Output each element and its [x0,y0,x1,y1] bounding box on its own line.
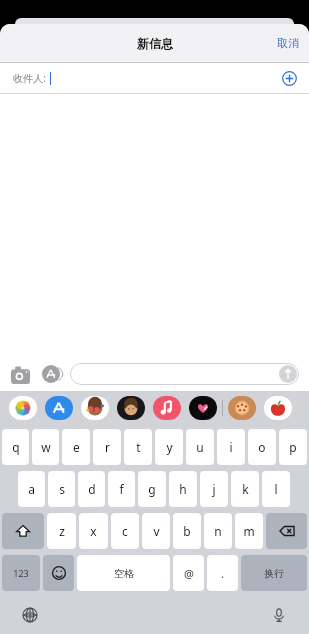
button[interactable]: m [235,513,263,549]
button[interactable]: 换行 [241,555,307,591]
staticText: 收件人: [13,71,46,85]
button[interactable]: Stickers [81,395,109,421]
button[interactable]: Photos [9,395,37,421]
button[interactable]: x [79,513,108,549]
button[interactable]: o [248,429,276,465]
button[interactable]: Dictation [267,603,291,627]
button[interactable]: 123 [2,555,40,591]
button[interactable]: f [108,471,135,507]
staticText: i [229,439,233,455]
button[interactable]: i [217,429,245,465]
staticText: n [214,523,222,539]
button[interactable]: d [78,471,105,507]
other: Send [279,365,297,383]
staticText: b [183,523,191,539]
staticText: p [289,439,297,455]
button[interactable]: q [2,429,29,465]
button[interactable]: l [262,471,290,507]
button[interactable]: More [264,395,292,421]
staticText: f [119,481,124,497]
button[interactable]: r [93,429,121,465]
staticText: j [212,481,216,497]
button[interactable]: 空格 [77,555,170,591]
button[interactable]: 取消 [267,30,309,56]
button[interactable]: 收件人: [0,63,309,93]
button[interactable]: n [204,513,232,549]
button[interactable]: Emoji [43,555,74,591]
staticText: 取消 [277,36,299,50]
button[interactable]: Memoji [117,395,145,421]
button[interactable]: h [169,471,197,507]
staticText: c [122,523,128,539]
button[interactable]: c [111,513,139,549]
staticText: v [153,523,160,539]
staticText: d [88,481,96,497]
button[interactable]: @ [173,555,204,591]
button[interactable]: w [32,429,59,465]
button[interactable]: s [48,471,75,507]
button[interactable]: App Store [45,395,73,421]
staticText: h [179,481,187,497]
button[interactable]: . [207,555,238,591]
button[interactable]: y [155,429,183,465]
button[interactable]: v [142,513,170,549]
button[interactable]: e [62,429,90,465]
staticText: t [136,439,141,455]
staticText: w [41,439,51,455]
button[interactable]: Add contact [278,67,300,89]
staticText: r [105,439,110,455]
staticText: 新信息 [137,36,173,51]
button[interactable]: z [47,513,76,549]
staticText: 123 [13,567,29,579]
staticText: y [166,439,173,455]
staticText: 换行 [264,567,284,580]
staticText: . [221,566,224,581]
button[interactable]: k [231,471,259,507]
button[interactable]: b [173,513,201,549]
button[interactable]: Music [153,395,181,421]
button[interactable]: Backspace [266,513,307,549]
button[interactable]: App Store [39,362,63,386]
staticText: k [242,481,249,497]
button[interactable]: a [18,471,45,507]
button[interactable]: Send [70,363,299,385]
staticText: @ [184,566,194,581]
staticText: x [90,523,97,539]
button[interactable]: Fitness [189,395,217,421]
button[interactable]: Sticker pack [228,395,256,421]
staticText: g [148,481,156,497]
staticText: m [243,523,255,539]
staticText: s [59,481,65,497]
staticText: a [28,481,35,497]
button[interactable]: Camera [8,362,32,386]
button[interactable]: p [279,429,307,465]
button[interactable]: u [186,429,214,465]
staticText: u [196,439,204,455]
button[interactable]: g [138,471,166,507]
button[interactable]: t [124,429,152,465]
staticText: z [59,523,65,539]
button[interactable]: Switch keyboard [18,603,42,627]
staticText: l [274,481,278,497]
staticText: o [258,439,266,455]
staticText: 空格 [114,567,134,580]
staticText: e [73,439,80,455]
staticText: q [12,439,20,455]
button[interactable]: Shift [2,513,44,549]
button[interactable]: j [200,471,228,507]
